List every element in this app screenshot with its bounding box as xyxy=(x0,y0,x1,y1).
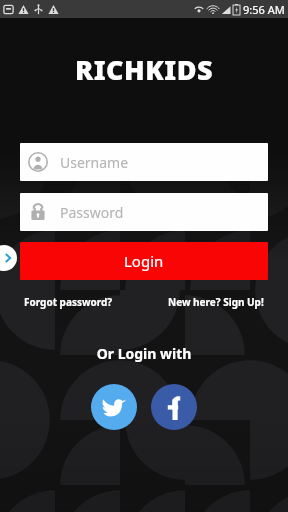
button[interactable]: New here? Sign Up! xyxy=(164,293,268,311)
button[interactable]: Password xyxy=(20,193,268,231)
staticText: RICHKIDS xyxy=(0,51,288,88)
button[interactable]: Forgot password? xyxy=(20,293,117,311)
button[interactable]: Username xyxy=(20,143,268,181)
staticText: Or Login with xyxy=(0,344,288,363)
staticText: New here? Sign Up! xyxy=(168,295,264,309)
staticText: Username xyxy=(60,153,129,172)
button[interactable]: Login with Facebook xyxy=(151,384,197,430)
staticText: Forgot password? xyxy=(24,295,113,309)
staticText: Login xyxy=(124,251,164,271)
staticText: Password xyxy=(60,203,124,222)
button[interactable]: Open drawer xyxy=(0,245,17,271)
staticText: 9:56 AM xyxy=(243,2,285,17)
button[interactable]: Login with Twitter xyxy=(91,384,137,430)
button[interactable]: Login xyxy=(20,242,268,280)
